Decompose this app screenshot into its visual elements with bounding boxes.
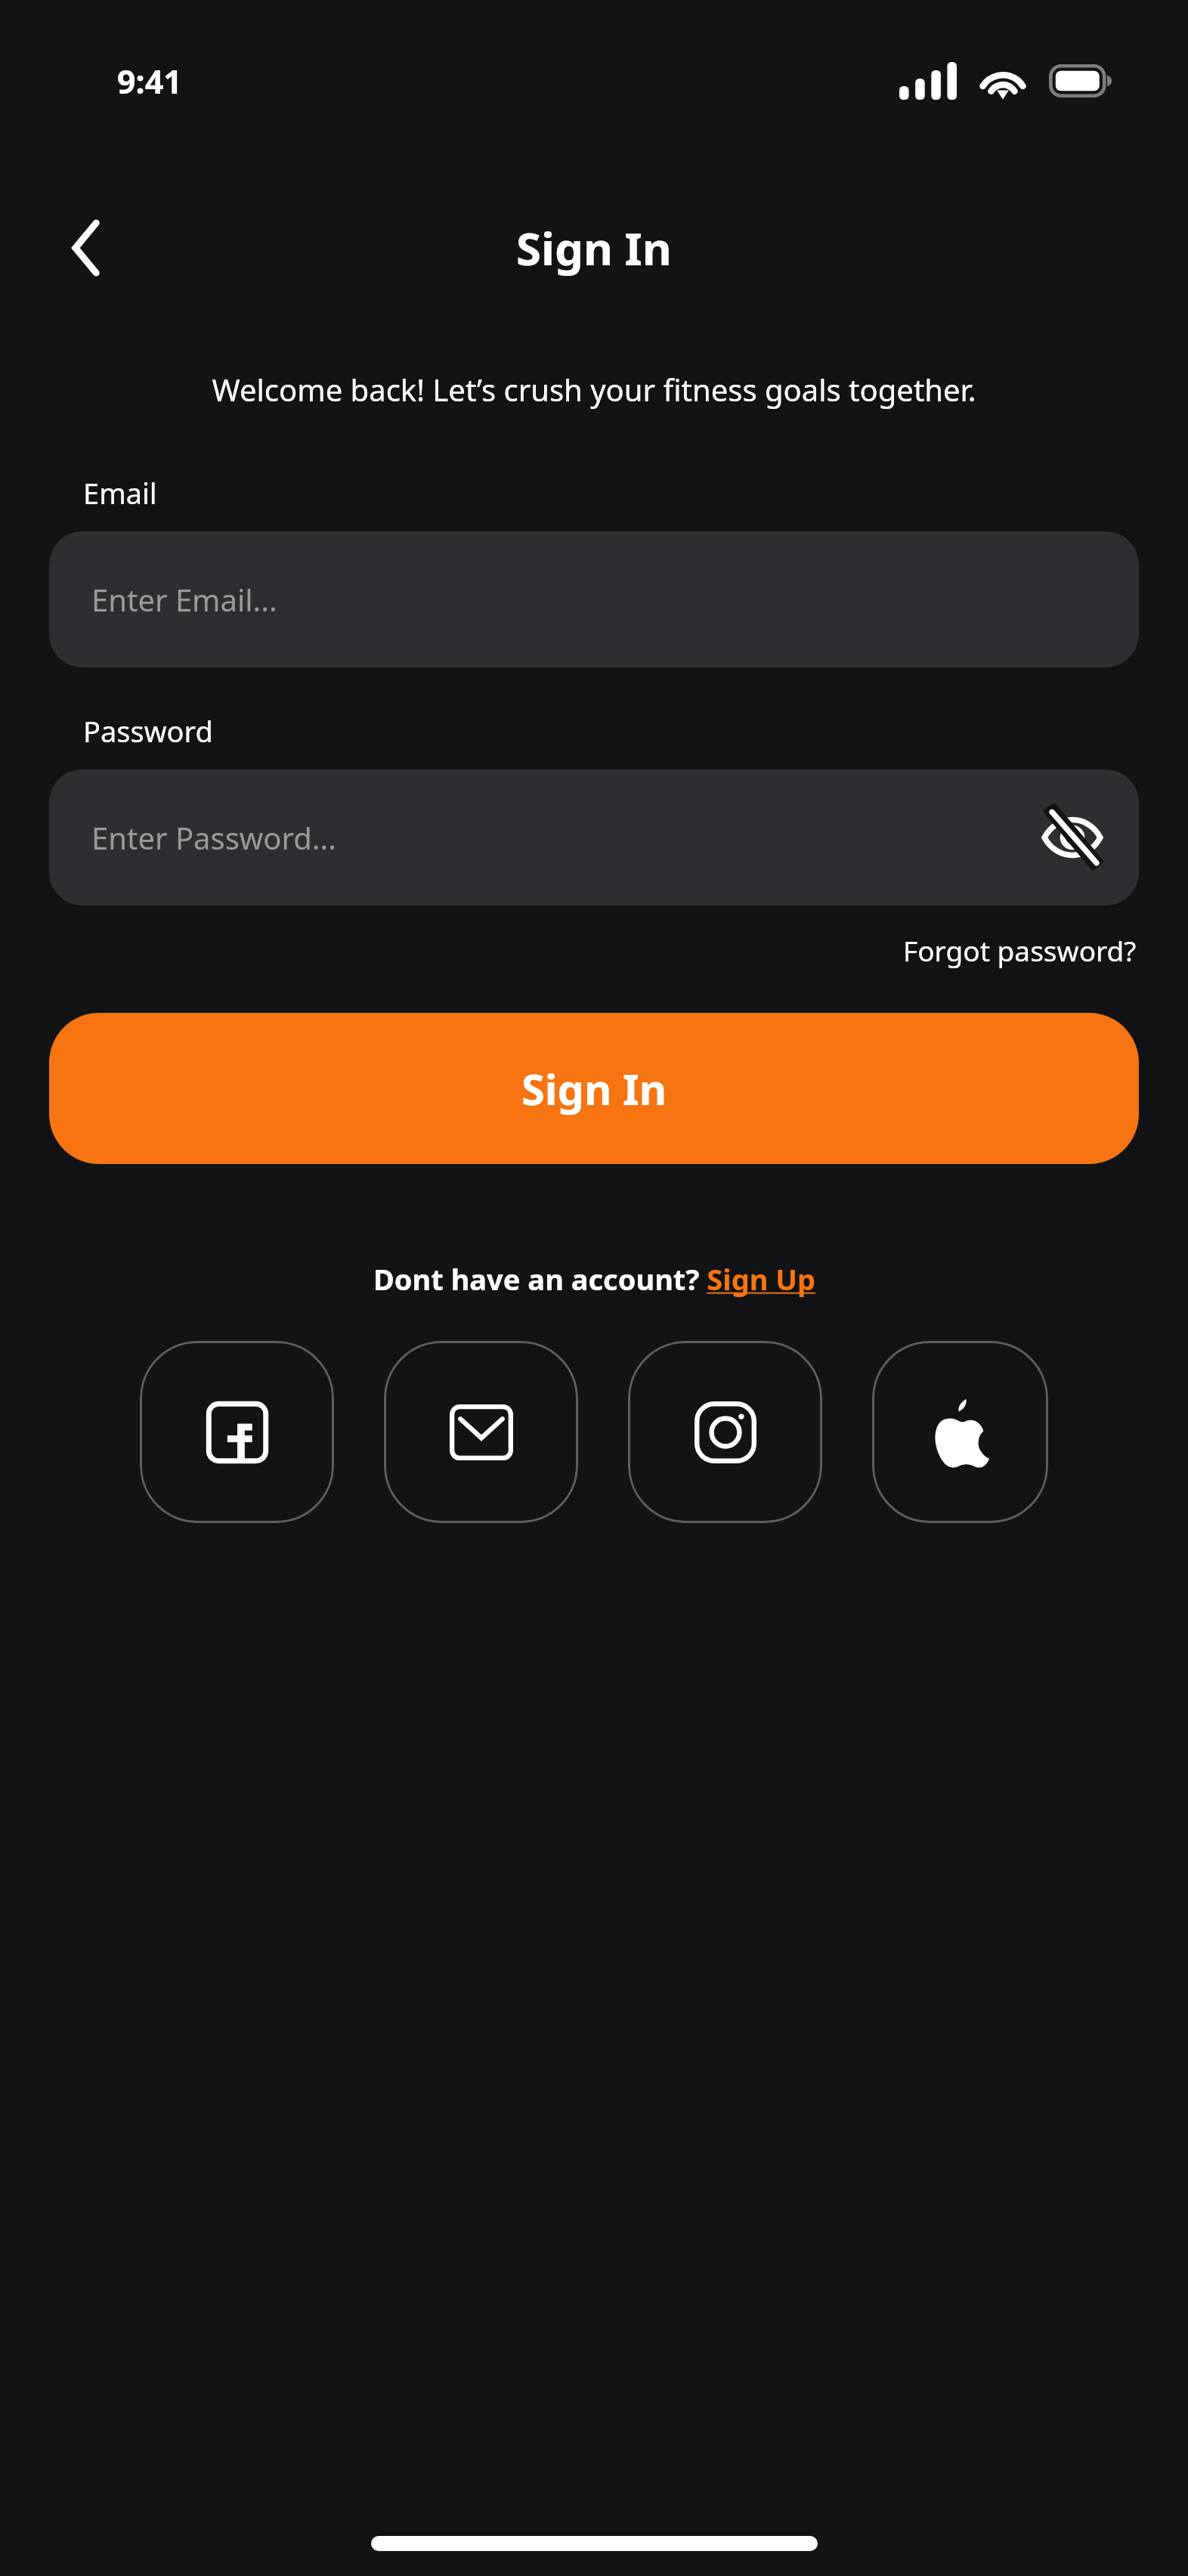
button[interactable]: Sign in with Instagram: [628, 1341, 822, 1523]
button[interactable]: Enter Password...: [49, 769, 1139, 906]
staticText: 9:41: [117, 59, 182, 104]
button[interactable]: Show password: [1033, 798, 1112, 877]
staticText: Dont have an account? Sign Up: [373, 1259, 815, 1299]
button[interactable]: Back: [47, 209, 125, 287]
button[interactable]: Sign in with Facebook: [140, 1341, 334, 1523]
button[interactable]: Sign in with Email: [384, 1341, 578, 1523]
button[interactable]: Forgot password?: [899, 925, 1141, 975]
button[interactable]: Sign In: [49, 1013, 1139, 1164]
button[interactable]: Dont have an account? Sign Up: [367, 1256, 821, 1302]
staticText: Enter Password...: [91, 817, 336, 858]
staticText: Forgot password?: [903, 931, 1137, 969]
staticText: Sign In: [516, 217, 672, 279]
button[interactable]: Enter Email...: [49, 531, 1139, 667]
staticText: Email: [83, 473, 157, 512]
staticText: Password: [83, 711, 213, 751]
button[interactable]: Sign in with Apple: [872, 1341, 1048, 1523]
staticText: Sign In: [521, 1060, 667, 1117]
staticText: Welcome back! Let’s crush your fitness g…: [56, 369, 1132, 410]
staticText: Enter Email...: [91, 579, 277, 620]
